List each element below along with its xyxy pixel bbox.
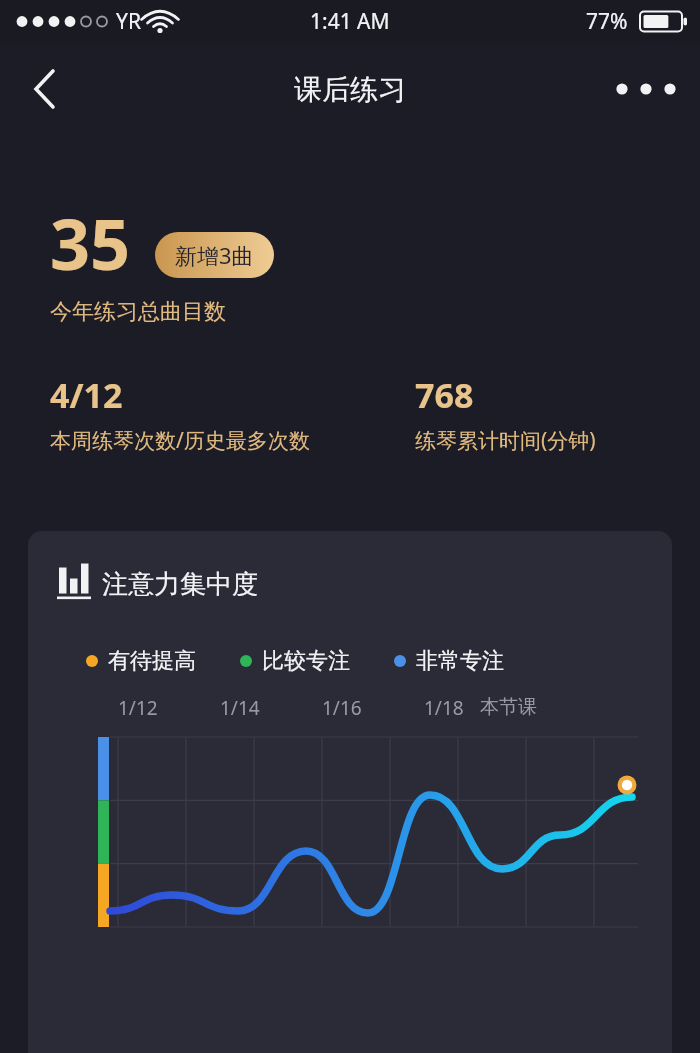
staticText: 1/12 <box>118 695 158 721</box>
staticText: 有待提高 <box>108 647 196 675</box>
staticText: 非常专注 <box>416 647 504 675</box>
staticText: YR <box>116 7 141 36</box>
staticText: 35 <box>50 195 131 290</box>
staticText: 1/18 <box>424 695 464 721</box>
staticText: 1/14 <box>220 695 260 721</box>
staticText: 注意力集中度 <box>102 568 258 601</box>
staticText: 新增3曲 <box>175 240 254 270</box>
staticText: 课后练习 <box>294 72 406 107</box>
staticText: 4/12 <box>50 372 123 418</box>
staticText: 77% <box>586 7 628 36</box>
staticText: 今年练习总曲目数 <box>50 298 226 326</box>
staticText: 本周练琴次数/历史最多次数 <box>50 426 310 455</box>
staticText: 768 <box>415 372 474 418</box>
staticText: 本节课 <box>480 695 537 719</box>
button[interactable]: More options <box>604 43 700 135</box>
staticText: 1/16 <box>322 695 362 721</box>
button[interactable]: 新增3曲 <box>155 232 274 278</box>
button[interactable]: Back <box>0 43 76 135</box>
staticText: 1:41 AM <box>310 7 390 36</box>
staticText: 练琴累计时间(分钟) <box>415 426 596 455</box>
staticText: 比较专注 <box>262 647 350 675</box>
